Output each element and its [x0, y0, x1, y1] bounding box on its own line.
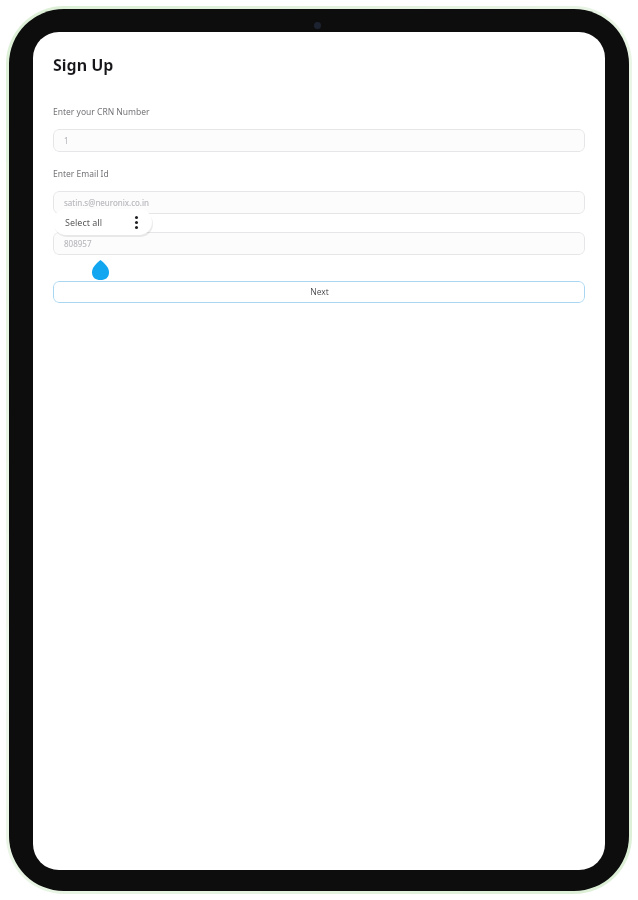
- other: More options: [130, 213, 142, 231]
- staticText: satin.s@neuronix.co.in: [64, 197, 149, 208]
- staticText: Sign Up: [53, 54, 114, 76]
- staticText: Next: [310, 286, 329, 298]
- button[interactable]: Next: [53, 281, 585, 303]
- other: Text selection handle: [92, 260, 109, 280]
- staticText: Select all: [65, 216, 103, 228]
- staticText: 1: [64, 135, 69, 146]
- button[interactable]: Select all: [53, 209, 152, 235]
- button[interactable]: satin.s@neuronix.co.in: [53, 191, 585, 214]
- staticText: 808957: [64, 238, 92, 249]
- staticText: Enter Email Id: [53, 168, 109, 180]
- button[interactable]: 1: [53, 129, 585, 152]
- button[interactable]: 808957: [53, 232, 585, 255]
- staticText: Enter your CRN Number: [53, 106, 150, 118]
